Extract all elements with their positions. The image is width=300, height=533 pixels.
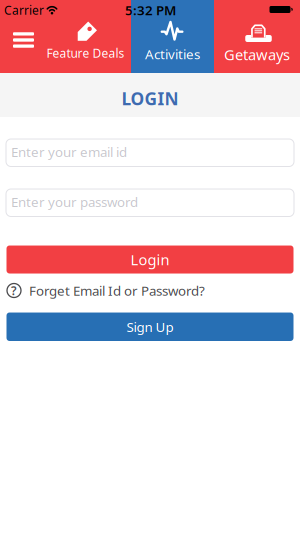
- staticText: Forget Email Id or Password?: [29, 282, 205, 299]
- staticText: Enter your password: [11, 193, 138, 211]
- staticText: Feature Deals: [46, 45, 124, 61]
- staticText: Enter your email id: [11, 143, 127, 161]
- button[interactable]: Activities: [131, 0, 214, 73]
- staticText: 5:32 PM: [125, 1, 176, 19]
- staticText: LOGIN: [121, 87, 178, 110]
- staticText: Activities: [145, 45, 200, 63]
- button[interactable]: Getaways: [214, 0, 300, 73]
- staticText: Login: [130, 250, 169, 269]
- staticText: Carrier: [4, 2, 44, 18]
- button[interactable]: [0, 0, 48, 73]
- button[interactable]: Feature Deals: [48, 0, 131, 73]
- staticText: Getaways: [224, 45, 290, 64]
- staticText: ?: [11, 282, 17, 298]
- button[interactable]: Enter your email id: [6, 139, 294, 166]
- button[interactable]: Sign Up: [6, 312, 293, 341]
- button[interactable]: Enter your password: [6, 189, 294, 216]
- button[interactable]: Login: [6, 245, 293, 273]
- staticText: Sign Up: [126, 318, 173, 336]
- button[interactable]: ?: [0, 283, 300, 297]
